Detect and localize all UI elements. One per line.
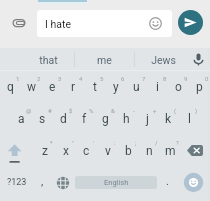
staticText: t bbox=[93, 80, 97, 94]
button[interactable]: b bbox=[118, 136, 139, 166]
button[interactable]: u bbox=[126, 72, 147, 102]
button[interactable]: v bbox=[97, 136, 118, 166]
staticText: b bbox=[125, 144, 132, 158]
staticText: x bbox=[63, 144, 69, 158]
button[interactable]: y bbox=[105, 72, 126, 102]
button[interactable]: s bbox=[32, 104, 53, 134]
staticText: Jews bbox=[151, 54, 176, 66]
button[interactable]: l bbox=[179, 104, 200, 134]
button[interactable]: m bbox=[160, 136, 181, 166]
staticText: a bbox=[18, 112, 25, 126]
staticText: c bbox=[83, 144, 90, 158]
staticText: * bbox=[50, 139, 53, 146]
staticText: q bbox=[7, 80, 14, 94]
button[interactable]: i bbox=[147, 72, 168, 102]
button[interactable]: p bbox=[189, 72, 210, 102]
button[interactable]: r bbox=[63, 72, 84, 102]
staticText: ? bbox=[176, 139, 179, 146]
staticText: . bbox=[166, 174, 170, 187]
staticText: - bbox=[133, 107, 135, 114]
button[interactable]: f bbox=[74, 104, 95, 134]
button[interactable]: Shift bbox=[1, 136, 29, 166]
button[interactable]: Open emoji keyboard bbox=[183, 172, 204, 193]
button[interactable]: o bbox=[168, 72, 189, 102]
staticText: 7 bbox=[142, 75, 146, 82]
staticText: m bbox=[165, 144, 176, 158]
staticText: 9 bbox=[184, 75, 188, 82]
staticText: u bbox=[133, 80, 140, 94]
staticText: s bbox=[39, 112, 46, 126]
button[interactable]: that bbox=[20, 49, 76, 71]
button[interactable]: a bbox=[11, 104, 32, 134]
button[interactable]: Insert emoji bbox=[147, 15, 164, 32]
button[interactable]: , bbox=[33, 168, 52, 197]
button[interactable]: . bbox=[158, 168, 177, 197]
staticText: : bbox=[114, 139, 116, 146]
button[interactable]: d bbox=[53, 104, 74, 134]
button[interactable]: Jews bbox=[135, 49, 191, 71]
staticText: 4 bbox=[79, 75, 83, 82]
button[interactable]: q bbox=[0, 72, 21, 102]
button[interactable]: e bbox=[42, 72, 63, 102]
button[interactable]: t bbox=[84, 72, 105, 102]
staticText: % bbox=[89, 107, 94, 114]
staticText: p bbox=[196, 80, 203, 94]
staticText: 3 bbox=[58, 75, 62, 82]
button[interactable]: Attach file bbox=[7, 11, 31, 35]
button[interactable]: k bbox=[158, 104, 179, 134]
staticText: $ bbox=[69, 107, 73, 114]
button[interactable]: Send bbox=[178, 10, 203, 35]
button[interactable]: c bbox=[76, 136, 97, 166]
staticText: w bbox=[27, 80, 37, 94]
staticText: 6 bbox=[121, 75, 125, 82]
staticText: that bbox=[39, 54, 58, 66]
staticText: ) bbox=[195, 107, 198, 114]
button[interactable]: w bbox=[21, 72, 42, 102]
staticText: j bbox=[146, 112, 149, 126]
button[interactable]: English bbox=[75, 176, 157, 189]
staticText: h bbox=[123, 112, 130, 126]
button[interactable]: Backspace bbox=[185, 140, 205, 161]
staticText: o bbox=[175, 80, 182, 94]
button[interactable]: z bbox=[34, 136, 55, 166]
button[interactable]: me bbox=[76, 49, 132, 71]
button[interactable]: j bbox=[137, 104, 158, 134]
staticText: y bbox=[113, 80, 119, 94]
staticText: i bbox=[156, 80, 159, 94]
staticText: 5 bbox=[100, 75, 104, 82]
staticText: f bbox=[82, 112, 87, 126]
staticText: ?123 bbox=[7, 177, 27, 188]
button[interactable]: Voice input bbox=[187, 48, 210, 71]
staticText: 1 bbox=[16, 75, 20, 82]
staticText: me bbox=[97, 54, 112, 66]
staticText: English bbox=[104, 178, 129, 187]
staticText: " bbox=[72, 139, 74, 146]
staticText: @ bbox=[26, 107, 32, 114]
staticText: k bbox=[165, 112, 172, 126]
button[interactable]: h bbox=[116, 104, 137, 134]
button[interactable]: Change keyboard language bbox=[52, 168, 74, 197]
button[interactable]: n bbox=[139, 136, 160, 166]
staticText: ( bbox=[174, 107, 177, 114]
button[interactable]: I hate bbox=[37, 10, 172, 37]
staticText: ' bbox=[93, 139, 95, 146]
staticText: I hate bbox=[45, 18, 71, 30]
staticText: g bbox=[102, 112, 109, 126]
staticText: 0 bbox=[205, 75, 209, 82]
staticText: l bbox=[188, 112, 191, 126]
staticText: 8 bbox=[163, 75, 167, 82]
staticText: ; bbox=[135, 139, 137, 146]
staticText: n bbox=[146, 144, 153, 158]
staticText: d bbox=[60, 112, 67, 126]
staticText: 2 bbox=[37, 75, 41, 82]
staticText: v bbox=[105, 144, 111, 158]
staticText: z bbox=[42, 144, 48, 158]
staticText: & bbox=[111, 107, 115, 114]
button[interactable]: ?123 bbox=[0, 168, 33, 197]
staticText: , bbox=[41, 174, 44, 187]
staticText: # bbox=[48, 107, 52, 114]
button[interactable]: g bbox=[95, 104, 116, 134]
staticText: + bbox=[153, 107, 157, 114]
button[interactable]: x bbox=[55, 136, 76, 166]
staticText: e bbox=[49, 80, 56, 94]
